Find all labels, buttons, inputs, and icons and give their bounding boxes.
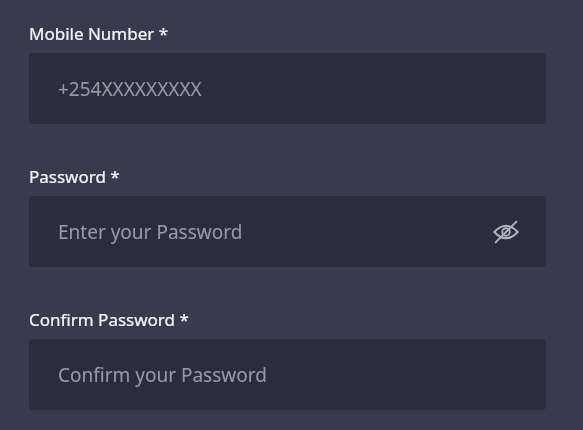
staticText: Confirm your Password — [58, 362, 267, 388]
button[interactable]: Confirm your Password — [29, 339, 546, 410]
staticText: +254XXXXXXXXX — [58, 76, 202, 102]
button[interactable]: Enter your Password — [29, 196, 546, 267]
button[interactable]: +254XXXXXXXXX — [29, 53, 546, 124]
staticText: Password * — [29, 165, 120, 188]
staticText: Enter your Password — [58, 219, 243, 245]
button[interactable]: Show password — [490, 216, 522, 248]
staticText: Mobile Number * — [29, 22, 169, 45]
staticText: Confirm Password * — [29, 308, 189, 331]
